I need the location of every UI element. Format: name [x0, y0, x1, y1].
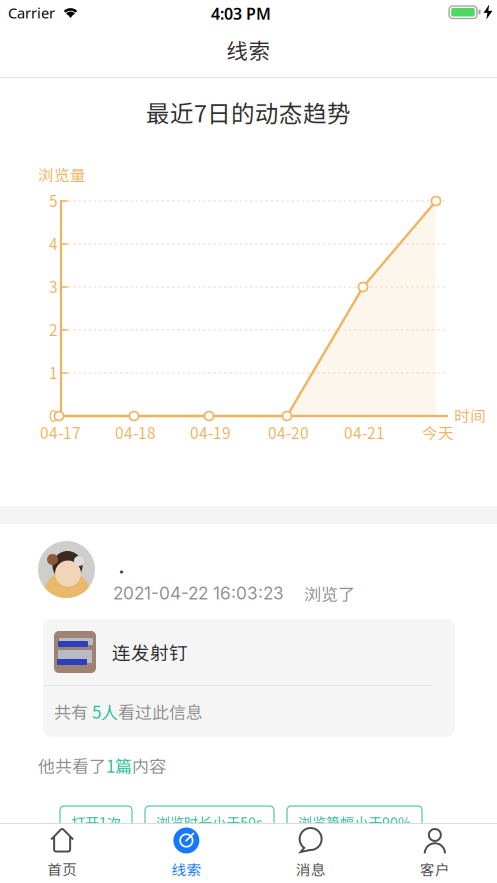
- button[interactable]: 客户: [373, 819, 497, 883]
- staticText: 共有: [54, 699, 92, 724]
- staticText: 浏览时长小于50s: [156, 812, 263, 832]
- staticText: 1篇: [106, 753, 132, 778]
- staticText: 线索: [171, 858, 201, 879]
- staticText: 客户: [420, 858, 450, 879]
- staticText: 线索: [226, 34, 270, 65]
- staticText: 浏览篇幅小于90%: [298, 812, 411, 832]
- staticText: 连发射钉: [112, 639, 188, 665]
- staticText: 看过此信息: [118, 699, 203, 724]
- staticText: 04-19: [190, 421, 231, 443]
- staticText: 1: [49, 361, 58, 383]
- staticText: ·: [114, 560, 129, 582]
- staticText: 内容: [132, 753, 166, 778]
- staticText: 0: [49, 404, 58, 426]
- staticText: 打开1次: [71, 812, 121, 832]
- staticText: 他共看了: [38, 753, 106, 778]
- staticText: 4:03 PM: [211, 3, 271, 24]
- staticText: 04-18: [115, 421, 156, 443]
- staticText: 2021-04-22 16:03:23: [113, 583, 284, 604]
- button[interactable]: 浏览时长小于50s: [145, 806, 274, 838]
- staticText: 5人: [92, 699, 118, 724]
- staticText: Carrier: [8, 3, 55, 22]
- staticText: 首页: [47, 858, 77, 879]
- staticText: 时间: [454, 404, 486, 426]
- button[interactable]: 打开1次: [60, 806, 132, 838]
- button[interactable]: 线索: [124, 819, 248, 883]
- button[interactable]: 消息: [248, 819, 373, 883]
- staticText: 04-21: [344, 421, 385, 443]
- staticText: 2: [49, 318, 58, 340]
- staticText: 消息: [296, 858, 326, 879]
- staticText: 5: [49, 189, 58, 211]
- staticText: 最近7日的动态趋势: [146, 95, 351, 129]
- button[interactable]: 浏览篇幅小于90%: [287, 806, 422, 838]
- staticText: 04-17: [40, 421, 81, 443]
- staticText: 4: [49, 232, 58, 254]
- staticText: 今天: [422, 421, 454, 443]
- button[interactable]: 首页: [0, 819, 124, 883]
- staticText: 浏览量: [38, 163, 86, 185]
- staticText: 3: [49, 275, 58, 297]
- staticText: 04-20: [268, 421, 309, 443]
- staticText: 浏览了: [304, 581, 355, 606]
